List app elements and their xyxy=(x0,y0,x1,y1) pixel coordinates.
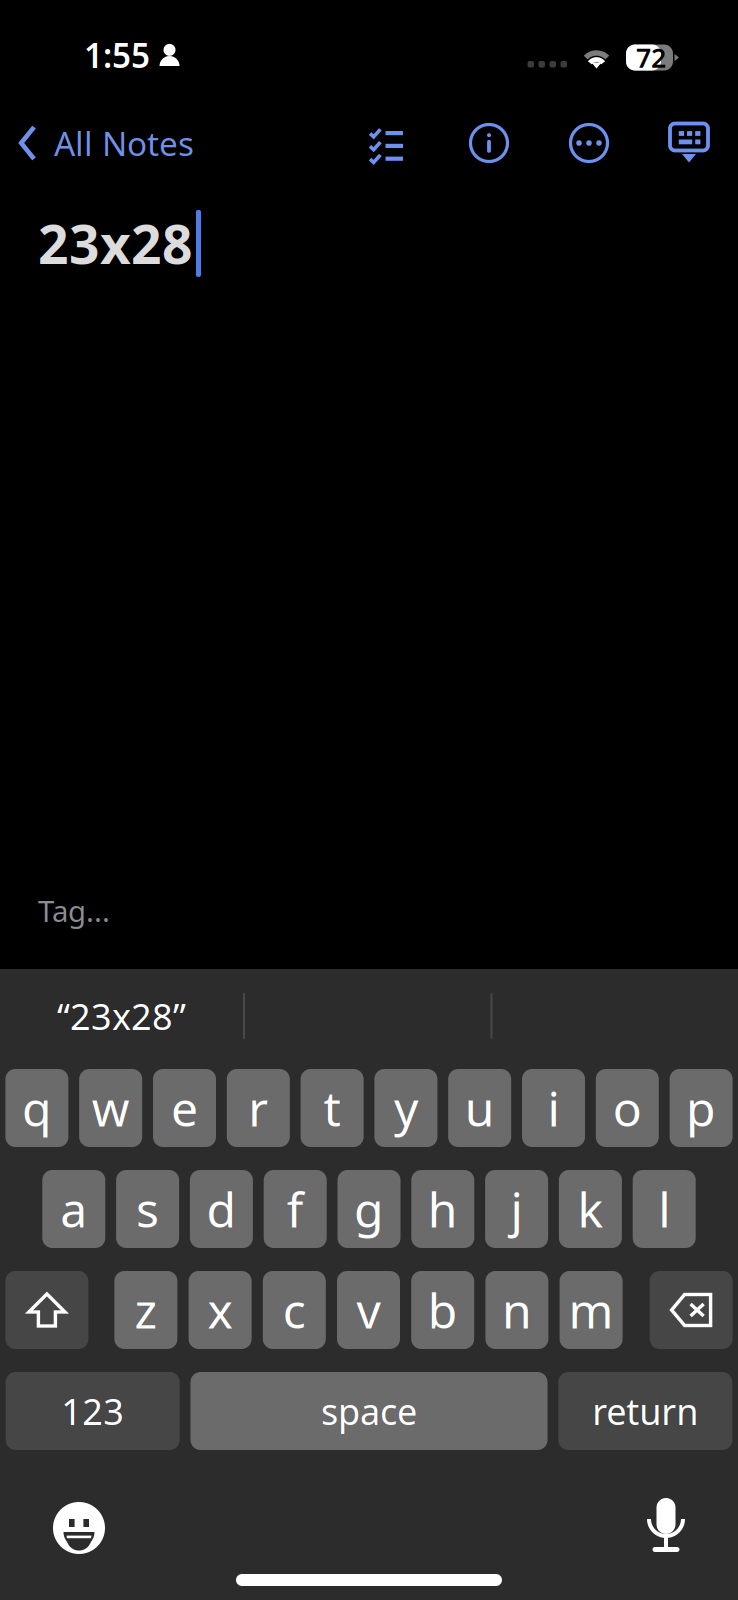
staticText: o xyxy=(613,1076,642,1140)
button[interactable]: l xyxy=(633,1170,696,1248)
button[interactable]: Checklist xyxy=(357,115,416,170)
button[interactable]: j xyxy=(485,1170,548,1248)
button[interactable]: e xyxy=(153,1069,216,1147)
staticText: u xyxy=(465,1076,495,1140)
button[interactable]: n xyxy=(485,1271,548,1349)
staticText: z xyxy=(134,1278,157,1342)
button[interactable]: k xyxy=(559,1170,622,1248)
staticText: space xyxy=(321,1387,417,1435)
button[interactable]: o xyxy=(596,1069,659,1147)
button[interactable]: Delete xyxy=(650,1271,733,1349)
staticText: s xyxy=(136,1177,159,1241)
button[interactable]: Hide Keyboard xyxy=(659,115,719,170)
staticText: k xyxy=(577,1177,603,1241)
button[interactable]: Emoji xyxy=(43,1492,115,1564)
button[interactable]: g xyxy=(337,1170,400,1248)
button[interactable]: b xyxy=(411,1271,474,1349)
button[interactable]: a xyxy=(42,1170,105,1248)
button[interactable]: p xyxy=(670,1069,733,1147)
button[interactable]: y xyxy=(374,1069,437,1147)
button[interactable]: z xyxy=(114,1271,177,1349)
staticText: b xyxy=(428,1278,458,1342)
button[interactable]: f xyxy=(264,1170,327,1248)
button[interactable]: d xyxy=(190,1170,253,1248)
button[interactable]: h xyxy=(411,1170,474,1248)
staticText: 72 xyxy=(636,40,666,75)
button[interactable]: q xyxy=(5,1069,68,1147)
button[interactable]: Shift xyxy=(5,1271,88,1349)
staticText: p xyxy=(686,1076,716,1140)
staticText: y xyxy=(394,1076,418,1140)
staticText: Tag... xyxy=(38,891,110,930)
staticText: 23x28 xyxy=(38,208,193,279)
button[interactable]: Dictate xyxy=(637,1488,695,1564)
staticText: w xyxy=(92,1076,130,1140)
staticText: x xyxy=(208,1278,233,1342)
staticText: q xyxy=(22,1076,52,1140)
staticText: n xyxy=(502,1278,532,1342)
button[interactable]: 123 xyxy=(6,1372,180,1450)
staticText: All Notes xyxy=(54,121,194,165)
staticText: 123 xyxy=(61,1387,124,1435)
staticText: h xyxy=(428,1177,458,1241)
button[interactable]: Note Info xyxy=(459,115,519,171)
button[interactable]: w xyxy=(79,1069,142,1147)
staticText: “23x28” xyxy=(57,992,186,1040)
staticText: r xyxy=(248,1076,268,1140)
staticText: m xyxy=(569,1278,614,1342)
staticText: l xyxy=(658,1177,670,1241)
button[interactable]: u xyxy=(448,1069,511,1147)
button[interactable]: t xyxy=(301,1069,364,1147)
staticText: v xyxy=(356,1278,380,1342)
button[interactable]: x xyxy=(189,1271,252,1349)
button[interactable]: space xyxy=(190,1372,547,1450)
button[interactable]: c xyxy=(263,1271,326,1349)
button[interactable]: i xyxy=(522,1069,585,1147)
staticText: return xyxy=(592,1387,698,1435)
button[interactable]: v xyxy=(337,1271,400,1349)
button[interactable]: s xyxy=(116,1170,179,1248)
staticText: 1:55 xyxy=(84,33,150,77)
button[interactable]: All Notes xyxy=(18,111,194,175)
staticText: i xyxy=(547,1076,559,1140)
button[interactable]: return xyxy=(558,1372,732,1450)
button[interactable]: m xyxy=(560,1271,623,1349)
staticText: a xyxy=(60,1177,87,1241)
staticText: t xyxy=(324,1076,341,1140)
staticText: d xyxy=(206,1177,236,1241)
staticText: g xyxy=(354,1177,384,1241)
staticText: c xyxy=(283,1278,306,1342)
staticText: f xyxy=(287,1177,304,1241)
button[interactable]: r xyxy=(227,1069,290,1147)
staticText: e xyxy=(171,1076,198,1140)
staticText: j xyxy=(511,1177,523,1241)
button[interactable]: More xyxy=(559,115,619,171)
